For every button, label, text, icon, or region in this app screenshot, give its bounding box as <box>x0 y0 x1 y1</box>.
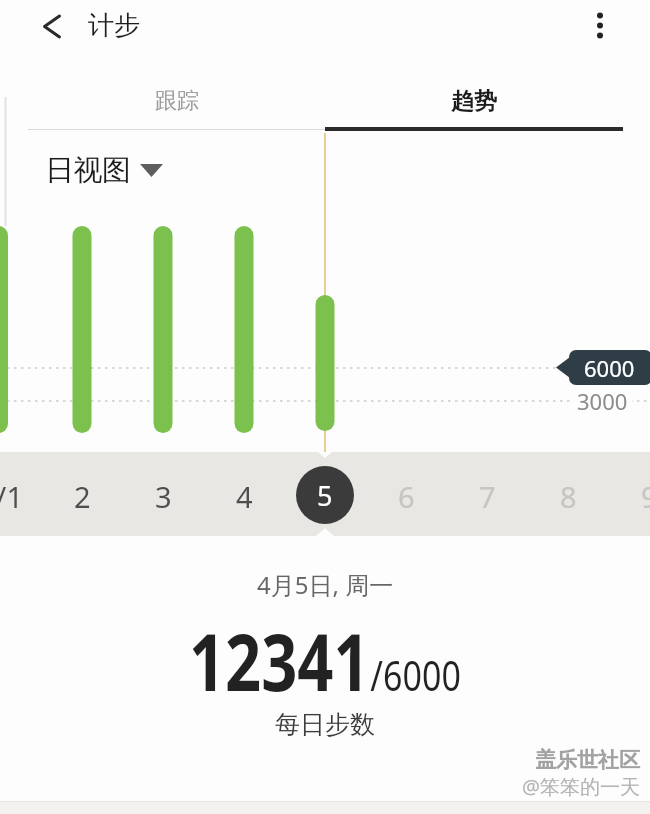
button[interactable]: 3 <box>133 476 193 516</box>
staticText: 趋势 <box>451 87 497 116</box>
staticText: 跟踪 <box>155 87 199 115</box>
button[interactable]: 9 <box>619 476 650 516</box>
staticText: 每日步数 <box>275 709 375 740</box>
staticText: 6 <box>398 477 415 516</box>
staticText: 3000 <box>577 386 628 416</box>
button[interactable] <box>28 4 76 48</box>
staticText: 4月5日, 周一 <box>257 568 394 601</box>
staticText: 7 <box>479 477 496 516</box>
button[interactable]: 4 <box>214 476 274 516</box>
staticText: 4 <box>236 477 253 516</box>
staticText: 12341 <box>189 608 370 714</box>
button[interactable]: 4/1 <box>0 476 31 516</box>
button[interactable]: 2 <box>52 476 112 516</box>
button[interactable]: 8 <box>538 476 598 516</box>
button[interactable]: 5 <box>296 466 354 524</box>
staticText: 4/1 <box>0 477 23 516</box>
staticText: 3 <box>155 477 172 516</box>
staticText: 5 <box>317 477 333 514</box>
button[interactable]: 6 <box>376 476 436 516</box>
button[interactable]: 跟踪 <box>28 78 325 124</box>
staticText: 2 <box>74 477 91 516</box>
staticText: 盖乐世社区 <box>535 747 640 773</box>
staticText: 9 <box>641 477 650 516</box>
staticText: 计步 <box>88 9 140 42</box>
button[interactable]: 日视图 <box>45 152 163 189</box>
button[interactable]: 7 <box>457 476 517 516</box>
button[interactable] <box>580 5 620 47</box>
staticText: 6000 <box>584 353 635 383</box>
button[interactable]: 趋势 <box>325 78 623 124</box>
staticText: 日视图 <box>45 152 131 189</box>
staticText: 8 <box>560 477 577 516</box>
staticText: /6000 <box>370 646 461 703</box>
staticText: @笨笨的一天 <box>522 773 640 800</box>
